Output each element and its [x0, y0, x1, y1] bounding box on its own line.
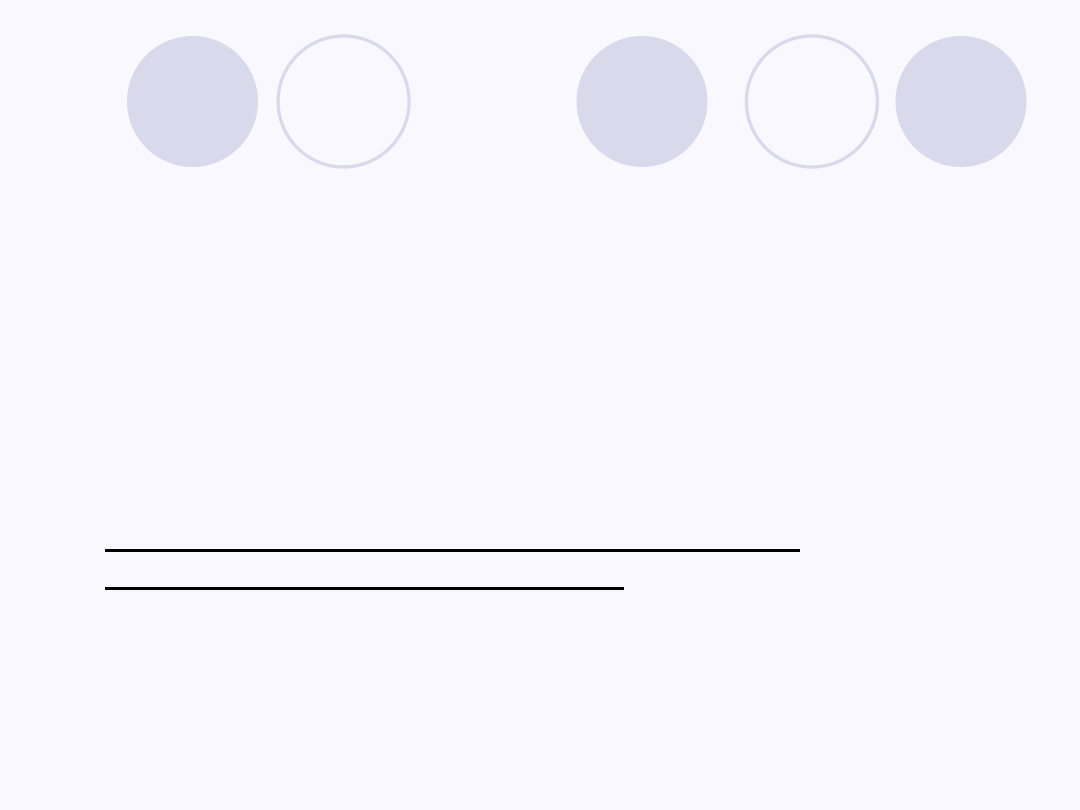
button[interactable]: Item 5, selected — [895, 36, 1026, 167]
button[interactable]: Item 1, selected — [127, 36, 258, 167]
button[interactable]: Item 4 — [746, 36, 877, 167]
button[interactable]: Item 3, selected — [576, 36, 707, 167]
button[interactable]: Item 2 — [278, 36, 409, 167]
